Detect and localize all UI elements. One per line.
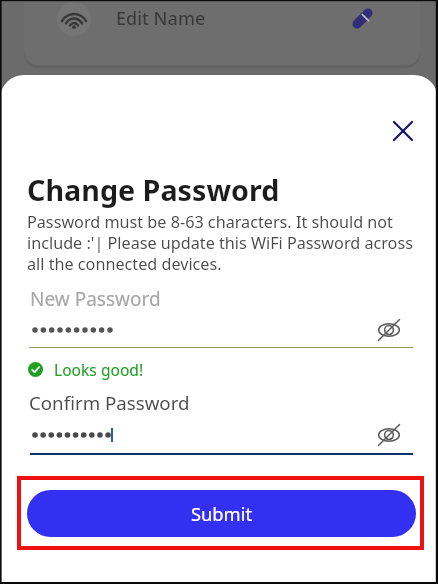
button[interactable]: Show confirm password: [373, 419, 405, 451]
staticText: Submit: [191, 501, 253, 526]
staticText: Edit Name: [116, 6, 206, 31]
staticText: Password must be 8-63 characters. It sho…: [27, 211, 415, 275]
staticText: Looks good!: [54, 359, 144, 380]
staticText: New Password: [30, 286, 161, 312]
button[interactable]: Show new password: [373, 314, 405, 346]
staticText: Change Password: [27, 170, 280, 209]
button[interactable]: Edit: [350, 6, 374, 30]
staticText: Confirm Password: [29, 390, 190, 415]
button[interactable]: Close: [383, 111, 423, 151]
button[interactable]: Edit Name: [0, 0, 438, 38]
button[interactable]: Submit: [27, 490, 416, 537]
